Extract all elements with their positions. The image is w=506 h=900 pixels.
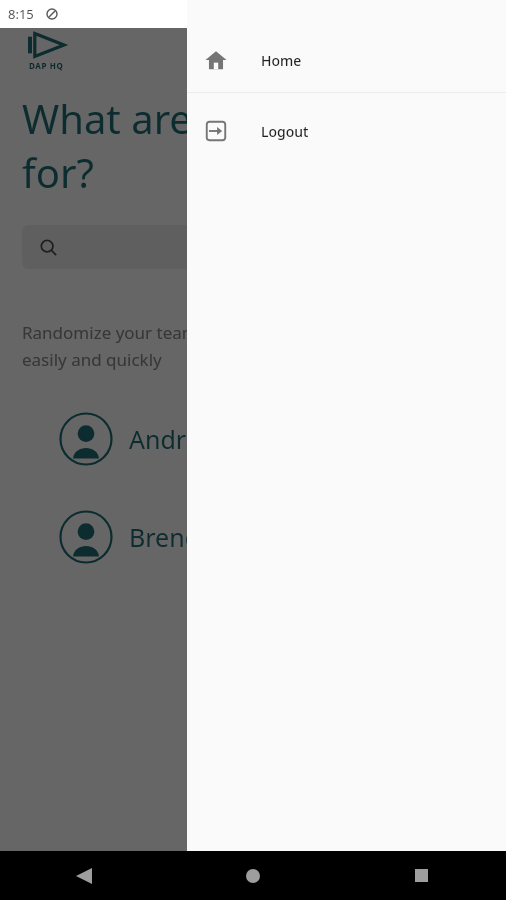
button[interactable] [0, 0, 187, 851]
staticText: Randomize your team [22, 321, 198, 344]
staticText: 8:15 [8, 5, 34, 23]
staticText: Home [261, 51, 302, 70]
staticText: 8:15 [8, 5, 34, 23]
staticText: DAP HQ [29, 60, 64, 71]
button[interactable] [22, 225, 484, 269]
staticText: Brenda Jones [129, 520, 285, 554]
staticText: What are you [22, 91, 272, 145]
button[interactable]: Andrew Smith [23, 397, 483, 481]
button[interactable]: Back [0, 851, 168, 900]
button[interactable]: Brenda Jones [23, 495, 483, 579]
button[interactable]: Logout [187, 93, 506, 169]
staticText: Logout [261, 122, 309, 141]
button[interactable]: Home [187, 28, 506, 92]
button[interactable]: Home [168, 851, 337, 900]
staticText: Andrew Smith [129, 422, 294, 456]
button[interactable]: Recent apps [337, 851, 506, 900]
staticText: easily and quickly [22, 348, 162, 371]
staticText: for? [22, 145, 94, 199]
